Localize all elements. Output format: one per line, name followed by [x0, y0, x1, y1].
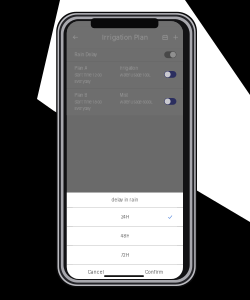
staticText: Everyday — [74, 106, 90, 111]
staticText: Confirm — [145, 269, 163, 275]
button[interactable]: 72H — [67, 246, 183, 264]
staticText: Water Usage 100L — [120, 73, 151, 77]
button[interactable]: 48H — [67, 227, 183, 245]
staticText: 48H — [120, 234, 129, 239]
button[interactable]: Confirm — [125, 265, 183, 279]
button[interactable]: Rain Delay — [67, 48, 183, 61]
staticText: delay in rain — [111, 197, 138, 203]
staticText: Plan A — [74, 66, 87, 71]
staticText: Water Usage 6000L — [120, 100, 153, 104]
staticText: Cancel — [88, 269, 104, 275]
staticText: Rain Delay — [74, 52, 97, 57]
button[interactable]: Add plan — [170, 31, 181, 43]
button[interactable]: Calendar — [160, 31, 170, 43]
staticText: 72H — [121, 253, 129, 258]
button[interactable]: 24H — [67, 208, 183, 226]
staticText: Irrigation Plan — [102, 33, 148, 41]
staticText: Mist — [120, 93, 128, 98]
staticText: Plan B — [74, 93, 87, 98]
staticText: Irrigation — [120, 66, 139, 71]
button[interactable]: Back — [69, 31, 82, 43]
staticText: 24H — [121, 214, 129, 219]
button[interactable]: Plan B — [67, 89, 183, 115]
button[interactable]: Plan A — [67, 62, 183, 88]
staticText: Start Time 12:00 — [74, 73, 101, 77]
staticText: Everyday — [74, 79, 90, 84]
staticText: Start Time 18:00 — [74, 100, 101, 104]
button[interactable]: Cancel — [67, 265, 125, 279]
